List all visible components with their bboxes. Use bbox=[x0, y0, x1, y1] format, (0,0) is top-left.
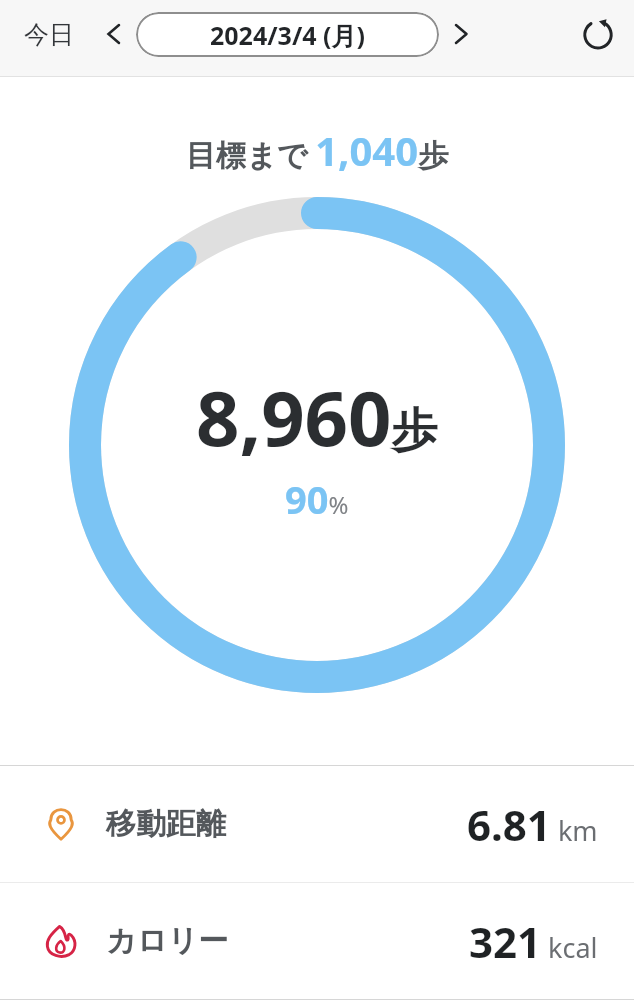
staticText: カロリー bbox=[106, 922, 229, 960]
button[interactable]: Previous day bbox=[92, 13, 134, 55]
staticText: 目標まで 1,040歩 bbox=[186, 123, 449, 177]
staticText: 321 kcal bbox=[469, 913, 598, 970]
staticText: 6.81 km bbox=[467, 796, 598, 853]
button[interactable]: Refresh bbox=[574, 10, 622, 58]
staticText: 移動距離 bbox=[106, 805, 226, 843]
staticText: 今日 bbox=[24, 19, 74, 50]
button[interactable]: カロリー bbox=[0, 883, 634, 999]
button[interactable]: 移動距離 bbox=[0, 766, 634, 882]
button[interactable]: 今日 bbox=[18, 11, 80, 58]
button[interactable]: Next day bbox=[441, 13, 483, 55]
staticText: 2024/3/4 (月) bbox=[210, 18, 366, 52]
staticText: 8,960歩 bbox=[196, 365, 438, 469]
button[interactable]: 2024/3/4 (月) bbox=[136, 12, 439, 57]
staticText: 90% bbox=[285, 473, 349, 525]
